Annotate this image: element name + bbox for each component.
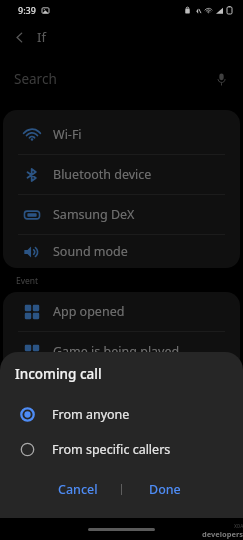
- staticText: Bluetooth device: [53, 166, 152, 183]
- staticText: From specific callers: [52, 441, 171, 458]
- staticText: From anyone: [52, 406, 130, 423]
- staticText: Search: [14, 70, 57, 88]
- staticText: Sound mode: [53, 243, 128, 260]
- staticText: Done: [149, 481, 181, 498]
- button[interactable]: Voice search: [212, 70, 230, 88]
- staticText: XDA: [234, 523, 243, 529]
- button[interactable]: Game is being played: [3, 332, 240, 371]
- staticText: Cancel: [58, 481, 98, 498]
- button[interactable]: Cancel: [35, 475, 121, 503]
- button[interactable]: Sound mode: [3, 235, 240, 268]
- button[interactable]: Navigate up: [6, 24, 32, 50]
- staticText: Event: [16, 275, 39, 287]
- button[interactable]: Wi-Fi: [3, 115, 240, 154]
- button[interactable]: Done: [122, 475, 208, 503]
- button[interactable]: Samsung DeX: [3, 195, 240, 234]
- button[interactable]: App opened: [3, 292, 240, 331]
- staticText: App opened: [53, 303, 125, 320]
- button[interactable]: From specific callers: [0, 432, 243, 467]
- staticText: 9:39: [18, 4, 36, 16]
- staticText: Wi-Fi: [53, 126, 82, 143]
- staticText: Game is being played: [53, 343, 180, 360]
- button[interactable]: Bluetooth device: [3, 155, 240, 194]
- staticText: Samsung DeX: [53, 206, 135, 223]
- staticText: If: [37, 28, 46, 46]
- button[interactable]: From anyone: [0, 397, 243, 432]
- staticText: developers: [202, 529, 243, 539]
- staticText: Incoming call: [15, 365, 102, 383]
